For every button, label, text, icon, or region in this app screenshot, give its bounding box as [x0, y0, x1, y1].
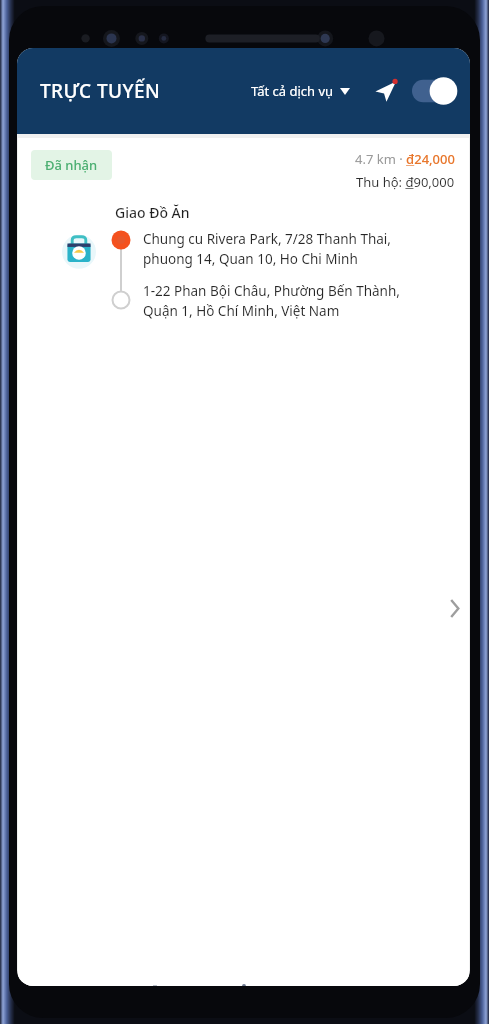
button[interactable]: Online toggle	[412, 78, 456, 104]
staticText: TRỰC TUYẾN	[40, 78, 161, 104]
button[interactable]: Đã nhận	[18, 138, 469, 986]
staticText: 4.7 km · đ24,000	[355, 150, 455, 168]
staticText: Đã nhận	[45, 156, 98, 174]
button[interactable]: Navigate	[368, 74, 402, 108]
button[interactable]: Tất cả dịch vụ	[247, 74, 354, 108]
staticText: Chung cu Rivera Park, 7/28 Thanh Thai, p…	[143, 230, 435, 268]
staticText: 1-22 Phan Bội Châu, Phường Bến Thành, Qu…	[143, 282, 435, 320]
staticText: Giao Đồ Ăn	[115, 203, 190, 222]
staticText: Tất cả dịch vụ	[251, 82, 334, 100]
staticText: Thu hộ: đ90,000	[356, 173, 455, 191]
